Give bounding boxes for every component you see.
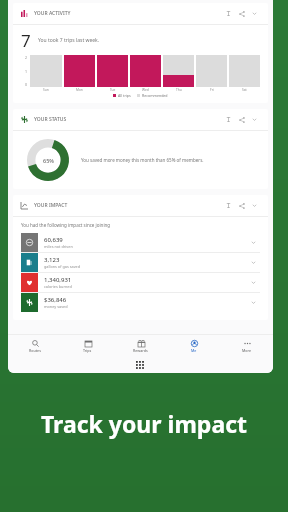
- button[interactable]: Sort: [222, 113, 235, 126]
- staticText: Mon: [76, 88, 83, 92]
- staticText: You had the following impact since joini…: [21, 222, 111, 228]
- staticText: 2: [25, 55, 28, 60]
- staticText: 3,123: [44, 256, 60, 264]
- staticText: gallons of gas saved: [44, 264, 81, 269]
- staticText: More: [242, 348, 252, 353]
- staticText: Sun: [43, 88, 49, 92]
- button[interactable]: 1,340,931: [21, 273, 260, 292]
- button[interactable]: More: [220, 335, 273, 357]
- staticText: Fri: [210, 88, 214, 92]
- staticText: 1,340,931: [44, 276, 72, 284]
- staticText: YOUR IMPACT: [34, 202, 68, 209]
- staticText: Recommended: [142, 93, 168, 98]
- staticText: Routes: [29, 348, 41, 353]
- staticText: Wed: [142, 88, 149, 92]
- staticText: 65%: [43, 157, 54, 164]
- staticText: Rewards: [133, 348, 148, 353]
- staticText: money saved: [44, 304, 68, 309]
- button[interactable]: $36,846: [21, 293, 260, 312]
- staticText: YOUR ACTIVITY: [34, 10, 71, 17]
- staticText: 1: [25, 69, 28, 74]
- staticText: 7: [21, 29, 31, 52]
- staticText: YOUR STATUS: [34, 116, 67, 123]
- button[interactable]: Collapse: [248, 7, 261, 20]
- button[interactable]: YOUR ACTIVITY: [13, 3, 268, 103]
- staticText: 60,639: [44, 236, 63, 244]
- staticText: 0: [25, 82, 28, 87]
- staticText: Thu: [176, 88, 182, 92]
- button[interactable]: 60,639: [21, 233, 260, 252]
- staticText: Me: [191, 348, 197, 353]
- staticText: miles not driven: [44, 244, 73, 249]
- button[interactable]: YOUR IMPACT: [13, 195, 268, 320]
- button[interactable]: Share: [235, 113, 248, 126]
- button[interactable]: 3,123: [21, 253, 260, 272]
- staticText: You saved more money this month than 65%…: [81, 157, 204, 163]
- button[interactable]: Collapse: [248, 199, 261, 212]
- button[interactable]: Me: [167, 335, 220, 357]
- button[interactable]: Sort: [222, 7, 235, 20]
- staticText: calories burned: [44, 284, 72, 289]
- button[interactable]: Share: [235, 7, 248, 20]
- button[interactable]: Rewards: [114, 335, 167, 357]
- staticText: $36,846: [44, 296, 67, 304]
- button[interactable]: Trips: [61, 335, 114, 357]
- button[interactable]: Routes: [8, 335, 61, 357]
- button[interactable]: Collapse: [248, 113, 261, 126]
- button[interactable]: Sort: [222, 199, 235, 212]
- staticText: Sat: [242, 88, 247, 92]
- staticText: Track your impact: [0, 408, 288, 439]
- button[interactable]: Share: [235, 199, 248, 212]
- staticText: Trips: [83, 348, 92, 353]
- button[interactable]: YOUR STATUS: [13, 109, 268, 189]
- staticText: Tue: [110, 88, 116, 92]
- staticText: All trips: [118, 93, 131, 98]
- staticText: You took 7 trips last week.: [38, 37, 100, 44]
